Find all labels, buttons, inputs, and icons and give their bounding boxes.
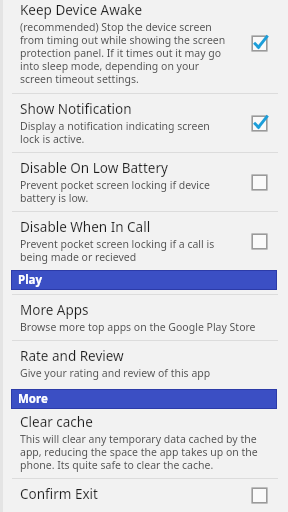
button[interactable]: Disable On Low Battery (0, 153, 288, 211)
button[interactable]: Show Notification (0, 94, 288, 152)
staticText: Confirm Exit (20, 485, 98, 503)
staticText: More Apps (20, 301, 89, 319)
staticText: Give your rating and review of this app (20, 366, 211, 380)
button[interactable]: Confirm Exit (0, 479, 288, 512)
other: Show Notification (238, 115, 280, 132)
staticText: More (18, 391, 48, 407)
button[interactable]: More Apps (0, 295, 288, 340)
other: Disable On Low Battery (238, 174, 280, 191)
staticText: (recommended) Stop the device screen fro… (20, 20, 232, 86)
staticText: This will clear any temporary data cache… (20, 432, 280, 472)
staticText: Keep Device Awake (20, 1, 143, 19)
other: Confirm Exit (238, 487, 280, 504)
button[interactable]: Disable When In Call (0, 212, 288, 268)
staticText: Display a notification indicating screen… (20, 119, 232, 146)
staticText: Prevent pocket screen locking if a call … (20, 237, 232, 264)
staticText: Show Notification (20, 100, 132, 118)
staticText: Disable On Low Battery (20, 159, 168, 177)
button[interactable]: Keep Device Awake (0, 0, 288, 93)
other: Disable When In Call (238, 233, 280, 250)
staticText: Disable When In Call (20, 218, 151, 236)
staticText: Play (18, 272, 43, 288)
button[interactable]: Clear cache (0, 413, 288, 478)
staticText: Browse more top apps on the Google Play … (20, 320, 256, 334)
button[interactable]: Rate and Review (0, 341, 288, 386)
staticText: Rate and Review (20, 347, 124, 365)
staticText: Clear cache (20, 413, 93, 431)
other: Keep Device Awake (238, 35, 280, 52)
staticText: Prevent pocket screen locking if device … (20, 178, 232, 205)
